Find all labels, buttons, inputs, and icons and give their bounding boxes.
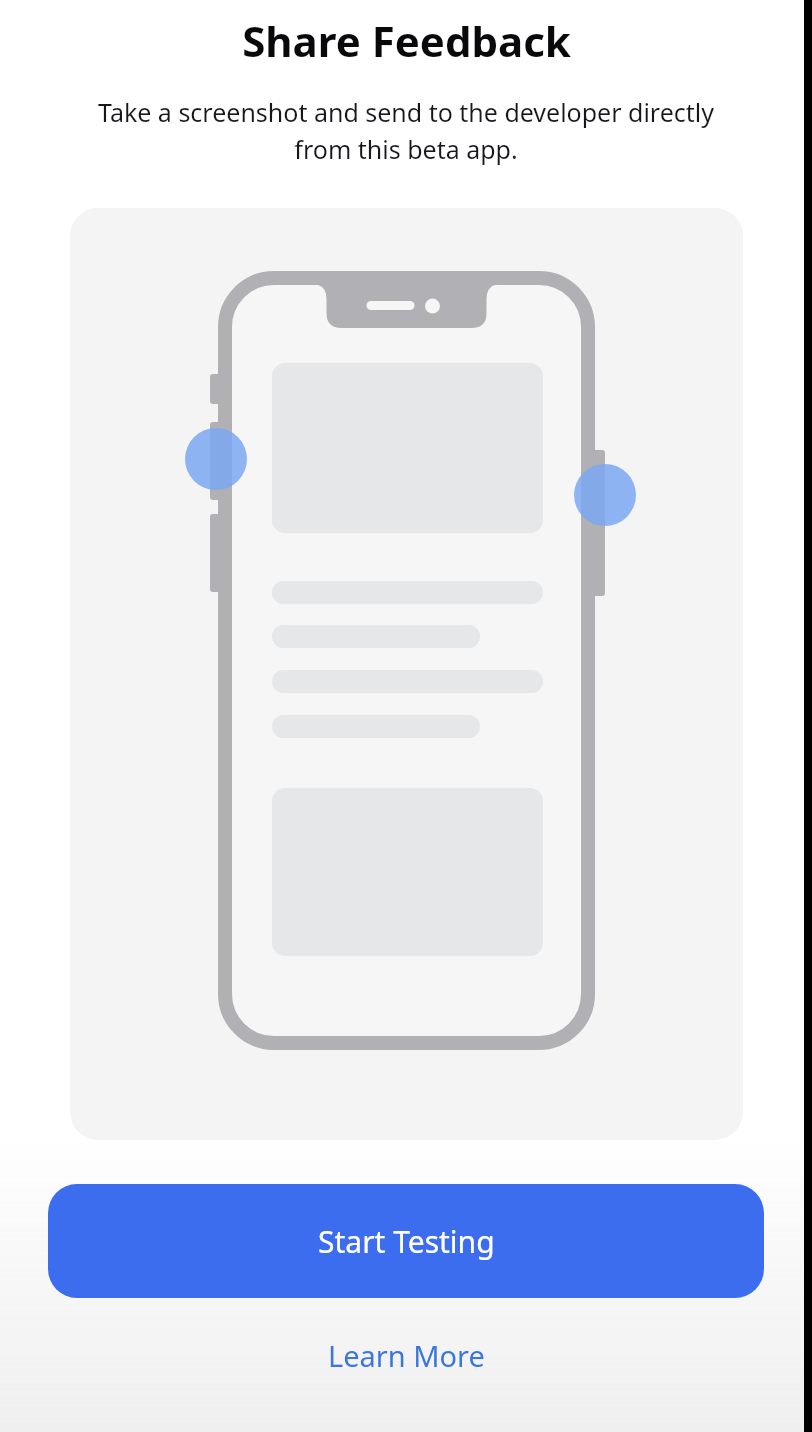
button[interactable]: Learn More [298,1320,515,1391]
button[interactable]: Start Testing [48,1184,764,1298]
staticText: Start Testing [318,1221,495,1262]
staticText: Take a screenshot and send to the develo… [80,95,732,166]
staticText: Share Feedback [242,12,571,69]
staticText: Learn More [328,1336,485,1375]
